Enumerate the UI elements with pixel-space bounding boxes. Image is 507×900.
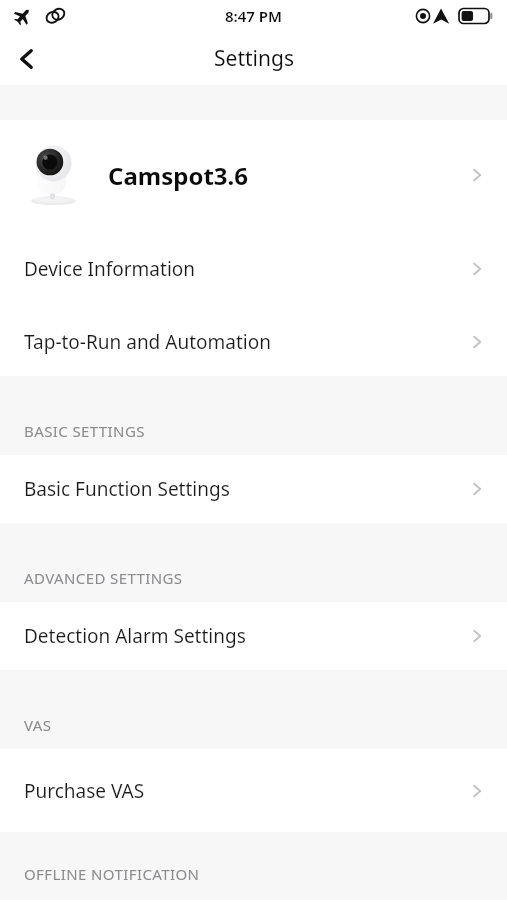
button[interactable]: Back <box>0 32 54 85</box>
staticText: Device Information <box>24 256 196 282</box>
button[interactable]: Basic Function Settings <box>0 455 507 523</box>
button[interactable]: Tap-to-Run and Automation <box>0 308 507 376</box>
staticText: Tap-to-Run and Automation <box>24 329 271 355</box>
button[interactable]: Purchase VAS <box>0 749 507 832</box>
staticText: BASIC SETTINGS <box>24 421 145 441</box>
staticText: Detection Alarm Settings <box>24 623 246 649</box>
staticText: 8:47 PM <box>225 6 282 26</box>
staticText: Settings <box>214 44 294 73</box>
button[interactable]: Camspot3.6 <box>0 120 507 230</box>
staticText: Basic Function Settings <box>24 476 230 502</box>
staticText: Purchase VAS <box>24 778 145 804</box>
staticText: ADVANCED SETTINGS <box>24 568 183 588</box>
button[interactable]: Detection Alarm Settings <box>0 602 507 670</box>
staticText: Camspot3.6 <box>108 159 249 192</box>
staticText: VAS <box>24 715 52 735</box>
staticText: OFFLINE NOTIFICATION <box>24 864 200 884</box>
button[interactable]: Device Information <box>0 230 507 308</box>
